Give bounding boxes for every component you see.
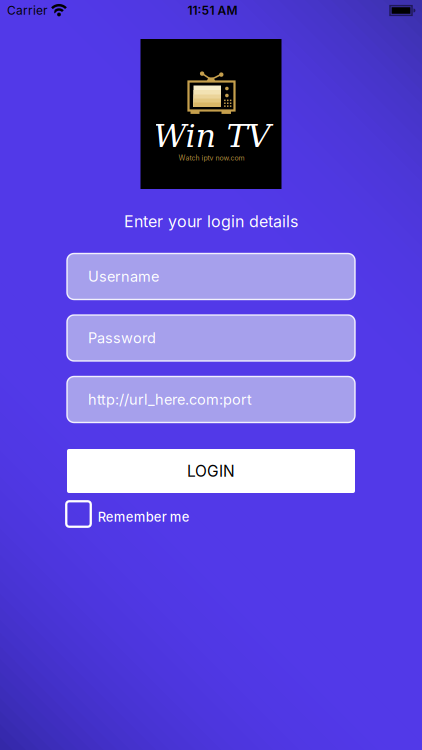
button[interactable]: Username xyxy=(67,253,355,299)
staticText: Password xyxy=(88,329,156,347)
staticText: http://url_here.com:port xyxy=(88,391,252,408)
staticText: LOGIN xyxy=(187,462,235,480)
staticText: Win TV xyxy=(153,117,270,155)
staticText: Carrier xyxy=(7,3,48,18)
button[interactable]: Password xyxy=(67,315,355,361)
staticText: Enter your login details xyxy=(124,212,298,231)
staticText: Remember me xyxy=(98,509,190,525)
button[interactable]: LOGIN xyxy=(67,449,355,493)
button[interactable]: Remember me xyxy=(66,501,190,527)
staticText: 11:51 AM xyxy=(187,3,237,18)
staticText: Watch iptv now.com xyxy=(178,154,244,162)
button[interactable]: http://url_here.com:port xyxy=(67,376,355,422)
staticText: Username xyxy=(88,268,159,285)
